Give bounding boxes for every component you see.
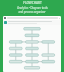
button[interactable]: Document [4,21,7,24]
button[interactable]: FLOWCHART [4,1,60,14]
button[interactable] [3,25,61,72]
staticText: and process organizer [18,10,46,14]
staticText: Analytics • Diagram tools [17,6,48,10]
staticText: FLOWCHART [23,1,42,5]
